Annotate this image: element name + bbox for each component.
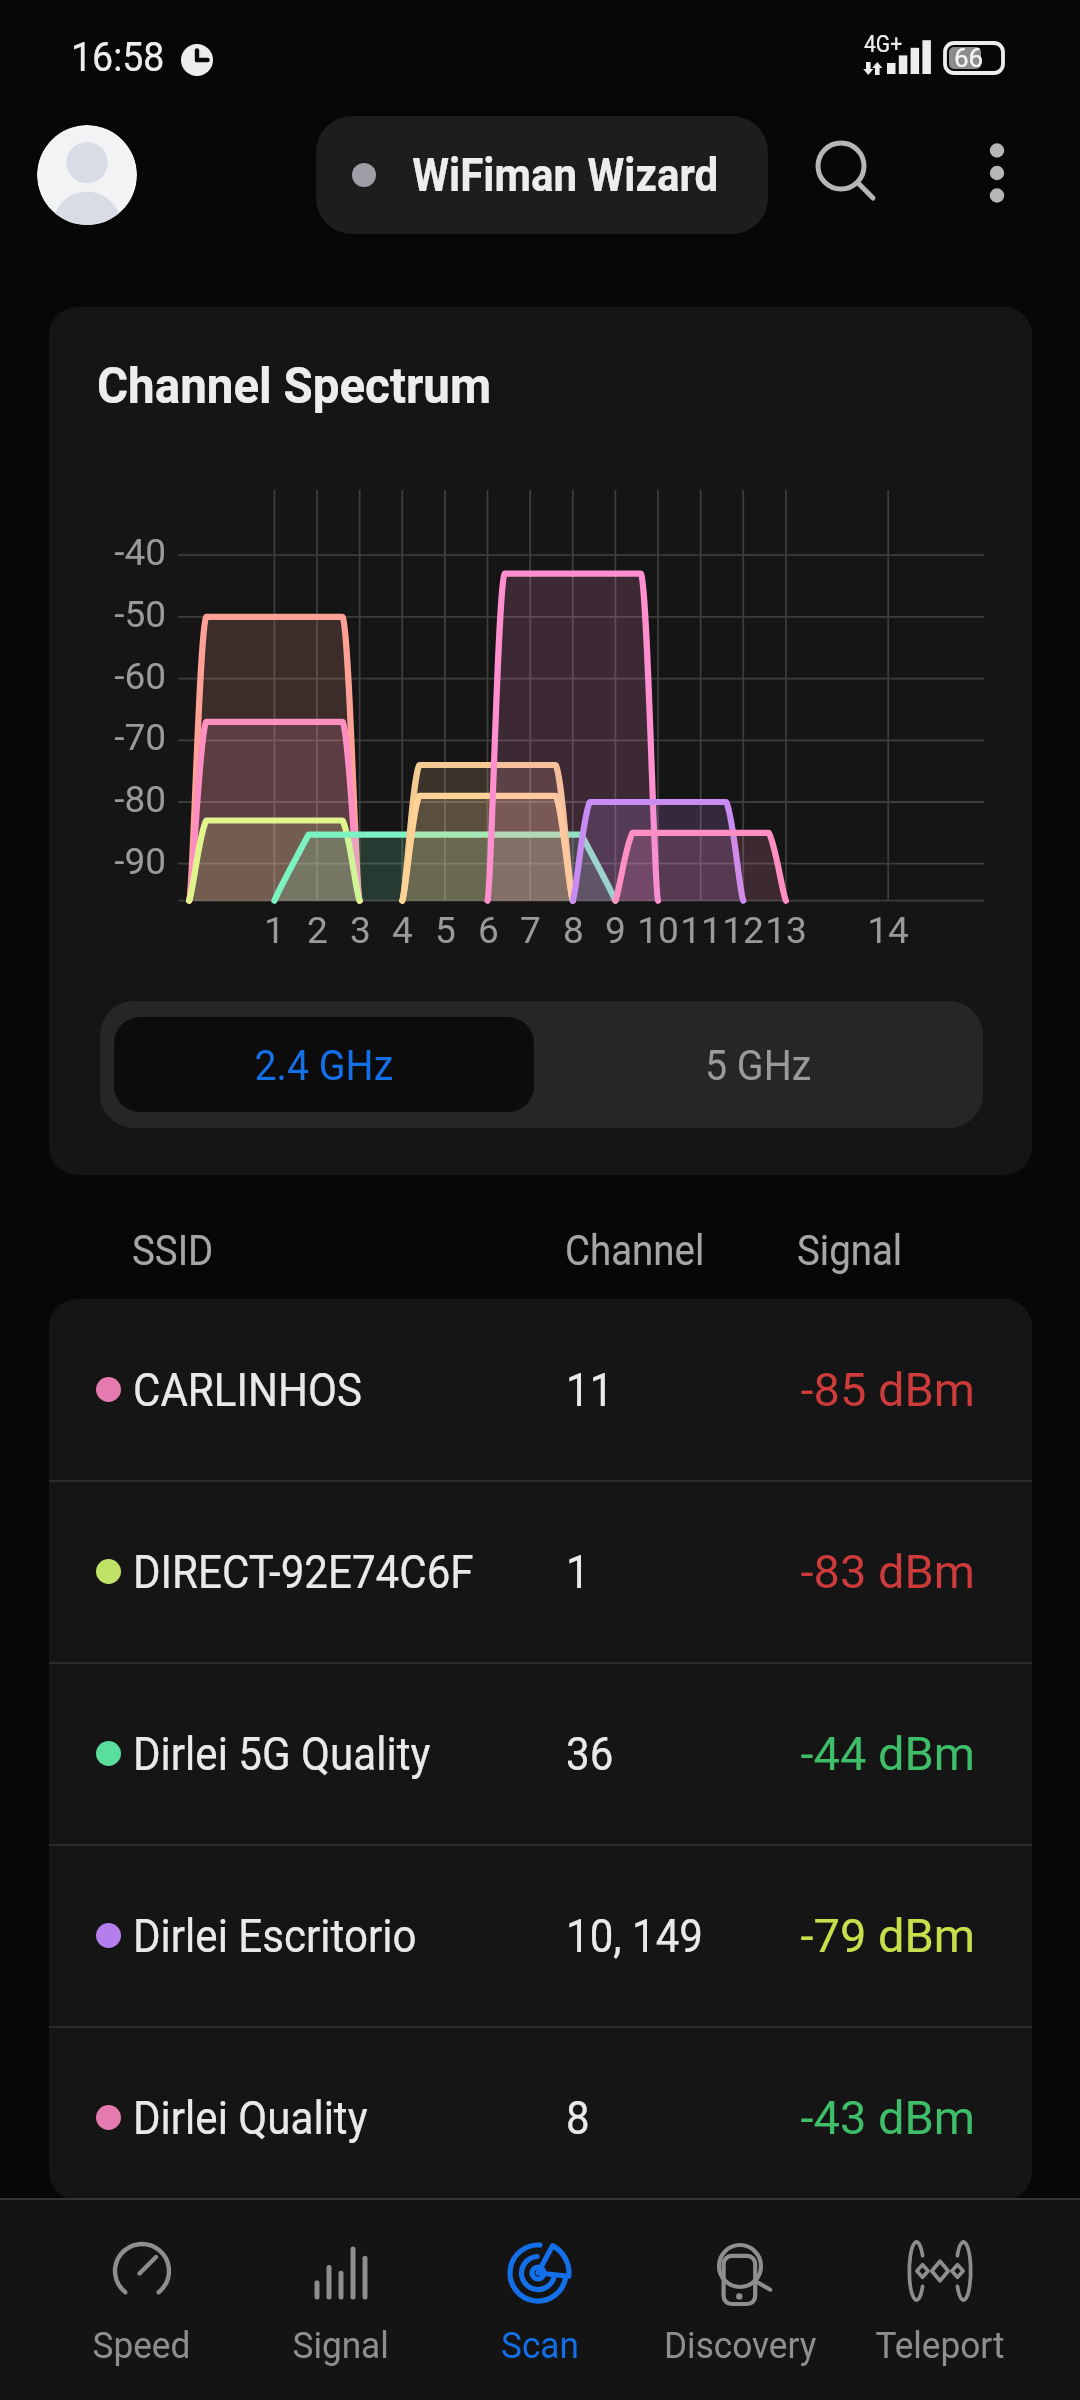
staticText: 12 [722, 909, 764, 952]
staticText: -50 [114, 593, 166, 636]
staticText: 36 [566, 1727, 614, 1781]
staticText: 3 [350, 909, 371, 952]
staticText: -60 [114, 655, 166, 698]
staticText: Dirlei 5G Quality [133, 1727, 430, 1781]
staticText: 7 [520, 909, 541, 952]
staticText: -83 dBm [800, 1544, 975, 1599]
button[interactable]: 2.4 GHz [114, 1017, 534, 1112]
staticText: 11 [680, 909, 722, 952]
button[interactable]: WiFiman Wizard [316, 116, 768, 234]
staticText: 11 [566, 1363, 614, 1417]
staticText: 10, 149 [566, 1909, 703, 1963]
staticText: 66 [954, 43, 984, 73]
staticText: Channel [565, 1226, 705, 1275]
staticText: Discovery [664, 2324, 817, 2367]
button[interactable]: Dirlei Escritorio [49, 1845, 1032, 2027]
staticText: 1 [264, 909, 285, 952]
staticText: 16:58 [71, 33, 165, 81]
button[interactable]: Teleport [840, 2200, 1040, 2400]
staticText: -40 [114, 531, 166, 574]
staticText: 4 [392, 909, 413, 952]
staticText: Dirlei Quality [133, 2091, 368, 2145]
staticText: 4G+ [864, 31, 902, 58]
staticText: -79 dBm [800, 1908, 975, 1963]
staticText: Speed [93, 2324, 190, 2367]
button[interactable]: 5 GHz [548, 1017, 968, 1112]
button[interactable]: Dirlei Quality [49, 2027, 1032, 2200]
staticText: 8 [563, 909, 584, 952]
button[interactable]: More options [954, 130, 1040, 216]
staticText: 10 [637, 909, 679, 952]
staticText: -70 [114, 716, 166, 759]
staticText: 6 [478, 909, 499, 952]
staticText: WiFiman Wizard [412, 148, 719, 202]
staticText: Channel Spectrum [97, 357, 491, 416]
button[interactable]: Dirlei 5G Quality [49, 1663, 1032, 1845]
staticText: 2.4 GHz [254, 1040, 394, 1090]
staticText: CARLINHOS [133, 1363, 363, 1417]
staticText: Dirlei Escritorio [133, 1909, 417, 1963]
staticText: 5 [435, 909, 456, 952]
staticText: 14 [867, 909, 909, 952]
staticText: 1 [566, 1545, 590, 1599]
staticText: Signal [797, 1226, 902, 1275]
staticText: Signal [292, 2324, 389, 2367]
staticText: 5 GHz [705, 1040, 812, 1090]
staticText: Teleport [875, 2324, 1005, 2367]
staticText: 8 [566, 2091, 590, 2145]
staticText: -90 [114, 840, 166, 883]
button[interactable]: Scan [440, 2200, 640, 2400]
staticText: 9 [605, 909, 626, 952]
staticText: SSID [132, 1226, 213, 1275]
button[interactable]: Search [800, 126, 898, 224]
staticText: 13 [765, 909, 807, 952]
button[interactable]: Signal [241, 2200, 440, 2400]
staticText: -43 dBm [800, 2090, 975, 2145]
button[interactable]: Profile [37, 125, 137, 225]
button[interactable]: CARLINHOS [49, 1299, 1032, 1481]
button[interactable]: DIRECT-92E74C6F [49, 1481, 1032, 1663]
staticText: -85 dBm [800, 1362, 975, 1417]
staticText: Scan [501, 2324, 579, 2367]
staticText: -44 dBm [800, 1726, 975, 1781]
staticText: DIRECT-92E74C6F [133, 1545, 474, 1599]
staticText: 2 [307, 909, 328, 952]
button[interactable]: Speed [42, 2200, 241, 2400]
button[interactable]: Discovery [640, 2200, 840, 2400]
staticText: -80 [114, 778, 166, 821]
